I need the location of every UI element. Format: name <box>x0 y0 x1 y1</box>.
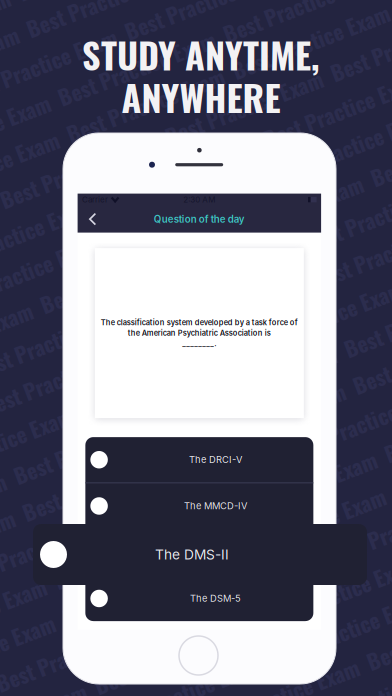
staticText: 2:30 AM <box>183 195 215 204</box>
staticText: Best Practice Exam Best Practice Exam Be… <box>0 87 392 119</box>
staticText: The DRCI-V <box>189 454 242 465</box>
staticText: Best Practice Exam Best Practice Exam Be… <box>0 575 392 606</box>
staticText: Best Practice Exam Best Practice Exam Be… <box>0 275 392 306</box>
staticText: the American Psychiatric Association is <box>128 329 271 338</box>
staticText: The classification system developed by a… <box>101 318 298 327</box>
staticText: Best Practice Exam Best Practice Exam Be… <box>0 312 392 344</box>
staticText: Best Practice Exam Best Practice Exam Be… <box>0 687 392 696</box>
staticText: Best Practice Exam Best Practice Exam Be… <box>0 50 392 81</box>
button[interactable]: The DMS-II <box>85 530 313 575</box>
staticText: Best Practice Exam Best Practice Exam Be… <box>0 387 392 419</box>
staticText: Best Practice Exam Best Practice Exam Be… <box>0 162 392 194</box>
staticText: Carrier <box>82 195 108 204</box>
staticText: The DSM-5 <box>190 593 241 604</box>
button[interactable]: The DRCI-V <box>85 437 313 482</box>
staticText: Best Practice Exam Best Practice Exam Be… <box>0 650 392 681</box>
staticText: Best Practice Exam Best Practice Exam Be… <box>0 425 392 456</box>
staticText: STUDY ANYTIME, <box>82 28 320 81</box>
staticText: Best Practice Exam Best Practice Exam Be… <box>0 537 392 569</box>
staticText: Best Practice Exam Best Practice Exam Be… <box>0 612 392 644</box>
staticText: Best Practice Exam Best Practice Exam Be… <box>0 462 392 494</box>
staticText: Best Practice Exam Best Practice Exam Be… <box>0 200 392 231</box>
staticText: Best Practice Exam Best Practice Exam Be… <box>0 125 392 156</box>
staticText: Best Practice Exam Best Practice Exam Be… <box>0 237 392 269</box>
staticText: ANYWHERE <box>121 70 280 123</box>
staticText: Best Practice Exam Best Practice Exam Be… <box>0 500 392 531</box>
button[interactable]: The MMCD-IV <box>85 483 313 529</box>
staticText: Best Practice Exam Best Practice Exam Be… <box>0 350 392 381</box>
staticText: ________. <box>182 339 216 348</box>
button[interactable]: The DMS-II <box>33 524 367 585</box>
staticText: Best Practice Exam Best Practice Exam Be… <box>0 12 392 44</box>
staticText: Best Practice Exam Best Practice Exam Be… <box>0 0 392 6</box>
button[interactable]: The DSM-5 <box>85 576 313 621</box>
staticText: The MMCD-IV <box>184 500 247 512</box>
staticText: The DMS-II <box>155 546 229 563</box>
button[interactable]: Back <box>78 208 108 231</box>
staticText: The DMS-II <box>190 547 241 558</box>
staticText: Question of the day <box>154 213 245 225</box>
